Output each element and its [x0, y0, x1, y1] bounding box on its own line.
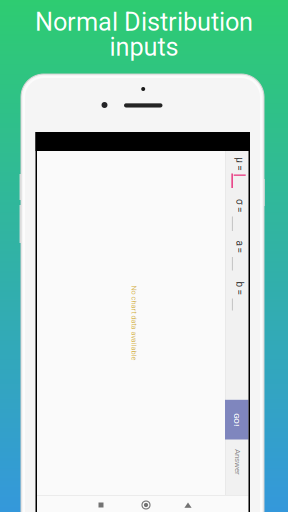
button[interactable]: Recents [176, 498, 200, 512]
staticText: No chart data available [105, 327, 180, 336]
button[interactable]: GO! [220, 217, 259, 241]
staticText: σ = [19, 220, 32, 232]
staticText: inputs [109, 32, 178, 62]
button[interactable]: Home [134, 498, 158, 512]
button[interactable]: Back [89, 498, 113, 512]
staticText: Normal Distribution [35, 7, 253, 37]
